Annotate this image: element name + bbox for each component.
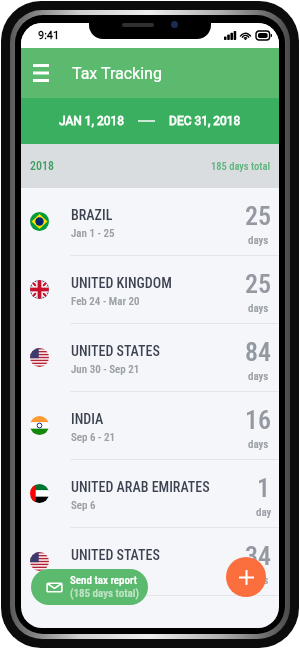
- button[interactable]: JAN 1, 2018: [21, 98, 279, 144]
- staticText: 2018: [30, 159, 55, 173]
- button[interactable]: UNITED STATES: [21, 528, 279, 596]
- staticText: Jan 1 - 25: [71, 227, 115, 240]
- staticText: Jun 30 - Sep 21: [71, 363, 140, 376]
- staticText: Send tax report: [70, 574, 138, 587]
- staticText: 84: [245, 337, 272, 367]
- button[interactable]: Add: [226, 557, 266, 597]
- staticText: day: [256, 506, 272, 519]
- staticText: 25: [245, 269, 272, 299]
- button[interactable]: Send tax report: [31, 569, 148, 605]
- button[interactable]: BRAZIL: [21, 188, 279, 256]
- staticText: Sep 6 - 21: [71, 431, 116, 444]
- staticText: 1: [257, 473, 271, 503]
- staticText: days: [248, 438, 269, 451]
- staticText: UNITED ARAB EMIRATES: [71, 479, 210, 495]
- staticText: INDIA: [71, 411, 104, 427]
- staticText: Tax Tracking: [72, 64, 162, 83]
- staticText: 185 days total: [211, 160, 271, 172]
- staticText: 34: [245, 541, 272, 571]
- staticText: JAN 1, 2018: [59, 114, 124, 128]
- staticText: Sep 6: [71, 499, 96, 512]
- button[interactable]: Menu: [23, 55, 59, 91]
- staticText: UNITED KINGDOM: [71, 275, 172, 291]
- staticText: days: [248, 234, 269, 247]
- button[interactable]: UNITED ARAB EMIRATES: [21, 460, 279, 528]
- staticText: BRAZIL: [71, 207, 113, 223]
- staticText: UNITED STATES: [71, 547, 160, 563]
- button[interactable]: UNITED STATES: [21, 324, 279, 392]
- staticText: 9:41: [38, 29, 60, 42]
- staticText: 25: [245, 201, 272, 231]
- button[interactable]: INDIA: [21, 392, 279, 460]
- staticText: days: [248, 370, 269, 383]
- staticText: days: [248, 574, 269, 587]
- staticText: days: [248, 302, 269, 315]
- staticText: Oct 3 - Nov 5: [71, 567, 128, 580]
- staticText: Feb 24 - Mar 20: [71, 295, 140, 308]
- staticText: DEC 31, 2018: [169, 114, 241, 128]
- button[interactable]: UNITED KINGDOM: [21, 256, 279, 324]
- staticText: UNITED STATES: [71, 343, 160, 359]
- staticText: (185 days total): [70, 587, 140, 600]
- staticText: 16: [245, 405, 272, 435]
